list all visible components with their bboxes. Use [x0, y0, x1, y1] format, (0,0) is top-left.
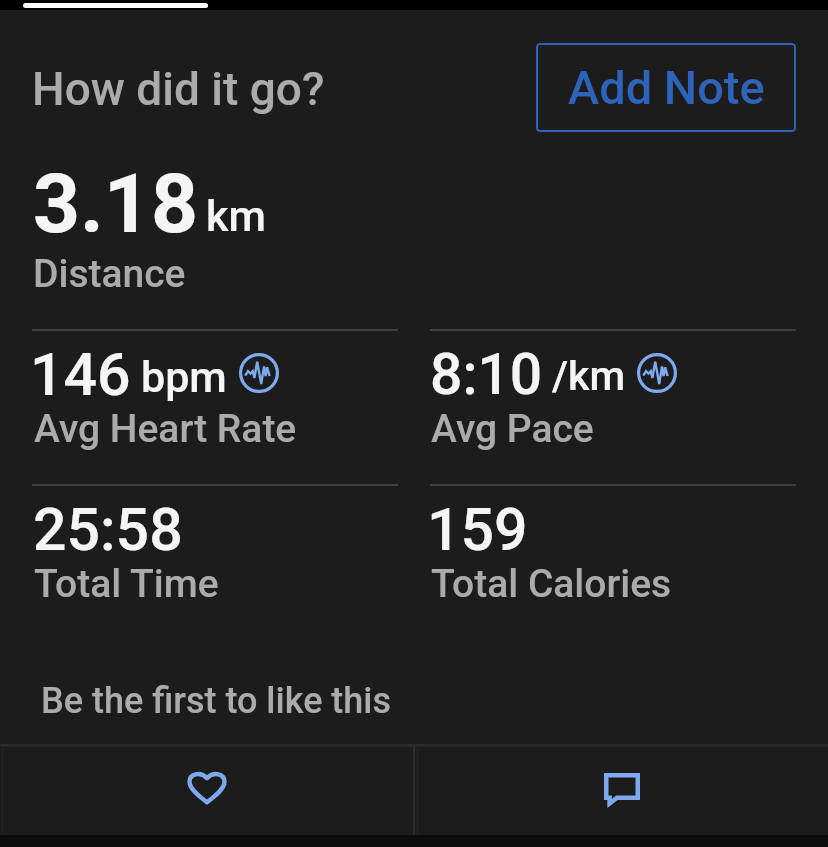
staticText: bpm: [141, 352, 227, 402]
staticText: Add Note: [568, 60, 765, 115]
staticText: 3.18: [33, 156, 198, 252]
staticText: Distance: [33, 251, 186, 297]
staticText: Avg Heart Rate: [34, 406, 297, 452]
staticText: Avg Pace: [431, 406, 594, 452]
staticText: 159: [427, 495, 528, 564]
staticText: km: [206, 191, 266, 241]
button[interactable]: Comment: [415, 744, 828, 834]
staticText: Be the first to like this: [41, 680, 392, 722]
staticText: 8:10: [430, 341, 543, 408]
staticText: Total Time: [34, 561, 219, 607]
staticText: How did it go?: [32, 62, 325, 116]
staticText: Total Calories: [431, 561, 672, 607]
staticText: 25:58: [33, 495, 183, 564]
staticText: /km: [552, 352, 626, 400]
button[interactable]: Like: [0, 744, 413, 834]
button[interactable]: Add Note: [536, 43, 796, 132]
staticText: 146: [30, 340, 131, 409]
